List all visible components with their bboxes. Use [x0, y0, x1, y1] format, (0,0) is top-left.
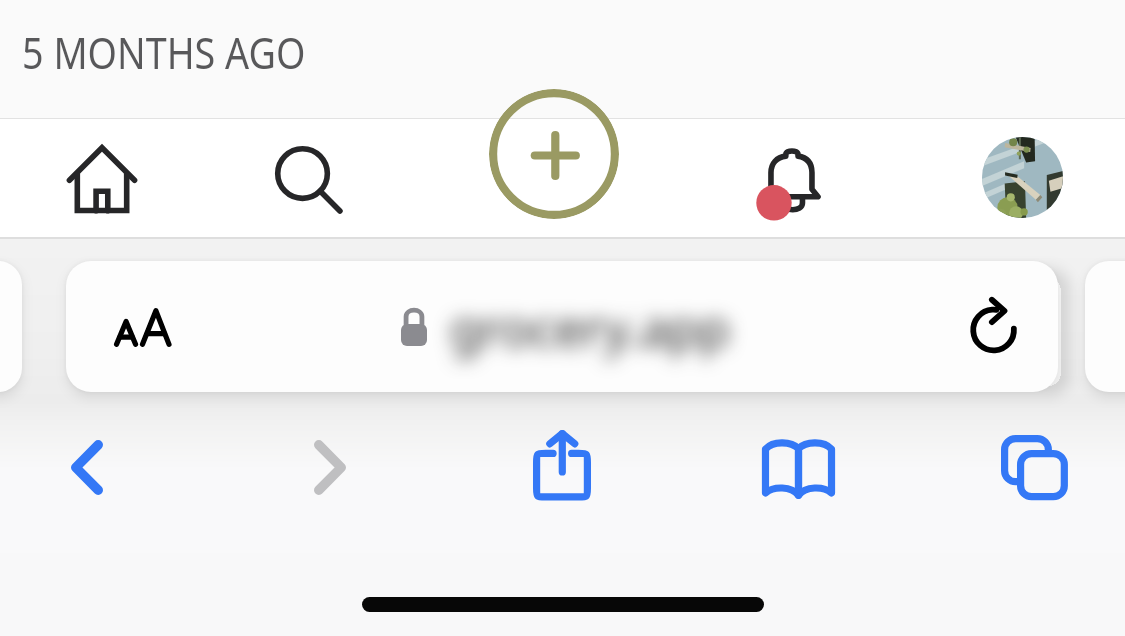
button[interactable]: Forward: [284, 421, 376, 513]
button[interactable]: Page settings: [91, 281, 193, 373]
button[interactable]: Back: [41, 421, 133, 513]
button[interactable]: Address bar: [66, 261, 1058, 392]
button[interactable]: Search: [259, 130, 359, 230]
button[interactable]: Reload page: [948, 281, 1036, 373]
staticText: 5 MONTHS AGO: [22, 23, 306, 82]
button[interactable]: Tabs: [986, 420, 1084, 516]
staticText: grocery.app: [450, 294, 730, 362]
button[interactable]: Create new post: [489, 89, 619, 219]
button[interactable]: Notifications: [745, 130, 847, 230]
button[interactable]: Bookmarks: [751, 424, 845, 512]
button[interactable]: Profile: [982, 137, 1063, 218]
button[interactable]: Home: [52, 130, 152, 230]
button[interactable]: Share: [515, 419, 609, 513]
